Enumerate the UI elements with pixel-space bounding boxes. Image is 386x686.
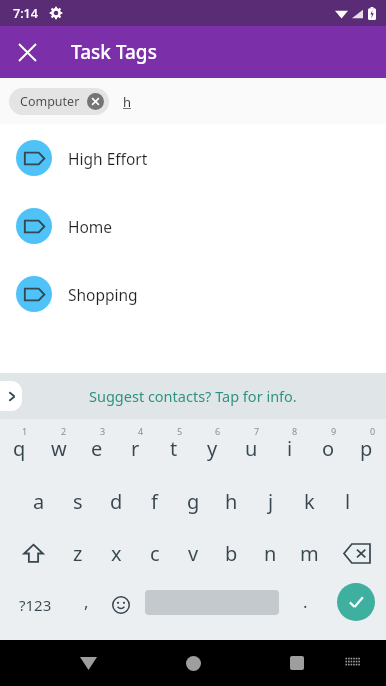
staticText: i [287, 435, 293, 462]
button[interactable]: u [232, 421, 271, 475]
staticText: z [73, 540, 83, 567]
staticText: Shopping [68, 284, 138, 305]
button[interactable]: m [290, 527, 329, 579]
staticText: Home [68, 216, 113, 237]
staticText: l [345, 488, 351, 515]
button[interactable]: a [19, 475, 58, 527]
staticText: m [300, 540, 319, 567]
staticText: 3 [100, 425, 106, 437]
button[interactable]: Expand suggestions [0, 381, 22, 411]
staticText: 7 [254, 425, 260, 437]
staticText: t [170, 435, 178, 462]
button[interactable]: . [285, 579, 325, 631]
button[interactable]: v [174, 527, 213, 579]
button[interactable]: t [154, 421, 193, 475]
staticText: h [123, 93, 132, 111]
button[interactable]: c [135, 527, 174, 579]
button[interactable]: Close [8, 33, 46, 71]
button[interactable]: Home [173, 643, 213, 683]
button[interactable]: e [77, 421, 116, 475]
button[interactable]: z [58, 527, 97, 579]
staticText: o [322, 435, 335, 462]
button[interactable]: b [212, 527, 251, 579]
button[interactable]: x [97, 527, 136, 579]
button[interactable]: g [174, 475, 213, 527]
staticText: 2 [61, 425, 67, 437]
staticText: a [33, 488, 45, 515]
staticText: Suggest contacts? Tap for info. [89, 386, 297, 406]
staticText: Task Tags [71, 39, 157, 65]
staticText: 6 [215, 425, 221, 437]
button[interactable]: s [58, 475, 97, 527]
button[interactable]: , [66, 579, 106, 631]
button[interactable]: d [97, 475, 136, 527]
staticText: h [225, 488, 238, 515]
staticText: 1 [22, 425, 28, 437]
button[interactable]: Shift [9, 527, 57, 579]
staticText: v [188, 540, 199, 567]
button[interactable]: j [251, 475, 290, 527]
staticText: High Effort [68, 148, 148, 169]
staticText: u [245, 435, 258, 462]
staticText: n [264, 540, 277, 567]
button[interactable]: k [290, 475, 329, 527]
button[interactable]: y [193, 421, 232, 475]
staticText: ?123 [19, 595, 52, 615]
staticText: 9 [331, 425, 337, 437]
staticText: p [360, 435, 373, 462]
staticText: Computer [20, 93, 80, 110]
button[interactable]: Back [68, 643, 108, 683]
button[interactable]: f [135, 475, 174, 527]
staticText: k [304, 488, 315, 515]
button[interactable]: Computer [9, 88, 109, 115]
button[interactable]: Switch keyboard [336, 645, 372, 681]
button[interactable]: n [251, 527, 290, 579]
button[interactable]: Emoji [100, 579, 142, 631]
button[interactable]: p [347, 421, 386, 475]
staticText: d [110, 488, 123, 515]
button[interactable]: l [328, 475, 367, 527]
staticText: 5 [177, 425, 183, 437]
staticText: f [151, 488, 158, 515]
button[interactable]: Suggest contacts? Tap for info. [0, 373, 386, 419]
staticText: g [187, 488, 200, 515]
staticText: . [303, 590, 308, 613]
staticText: y [207, 435, 218, 462]
staticText: q [13, 435, 26, 462]
button[interactable]: q [0, 421, 39, 475]
button[interactable]: Shopping [0, 260, 386, 328]
button[interactable]: r [116, 421, 155, 475]
staticText: e [91, 435, 103, 462]
staticText: 8 [292, 425, 298, 437]
staticText: x [111, 540, 122, 567]
button[interactable]: i [270, 421, 309, 475]
button[interactable]: h [212, 475, 251, 527]
button[interactable]: ?123 [4, 579, 66, 631]
staticText: b [225, 540, 238, 567]
staticText: 7:14 [13, 5, 38, 22]
staticText: j [268, 488, 274, 515]
button[interactable]: Recents [277, 643, 317, 683]
button[interactable]: w [39, 421, 78, 475]
staticText: r [131, 435, 140, 462]
button[interactable]: Done [337, 583, 375, 621]
staticText: , [84, 590, 89, 613]
staticText: c [150, 540, 160, 567]
staticText: w [51, 435, 67, 462]
button[interactable]: o [309, 421, 348, 475]
staticText: 0 [370, 425, 376, 437]
staticText: s [73, 488, 83, 515]
button[interactable]: Backspace [333, 527, 381, 579]
staticText: 4 [138, 425, 144, 437]
button[interactable]: Home [0, 192, 386, 260]
button[interactable]: High Effort [0, 124, 386, 192]
